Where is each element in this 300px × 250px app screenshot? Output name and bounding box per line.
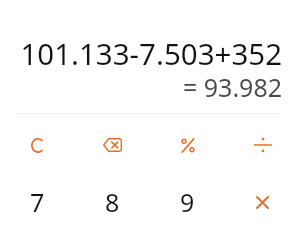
staticText: 9 [180,185,195,219]
button[interactable]: Multiply [225,176,300,228]
button[interactable]: 9 [150,176,225,228]
staticText: 8 [105,185,120,219]
button[interactable]: Backspace [75,114,150,176]
button[interactable]: Divide [225,114,300,176]
staticText: 101.133-7.503+352 [20,33,282,73]
button[interactable]: 7 [0,176,75,228]
staticText: = 93.982 [182,70,282,104]
button[interactable]: 8 [75,176,150,228]
button[interactable]: Percent [150,114,225,176]
button[interactable]: Clear [0,114,75,176]
staticText: 7 [30,185,45,219]
